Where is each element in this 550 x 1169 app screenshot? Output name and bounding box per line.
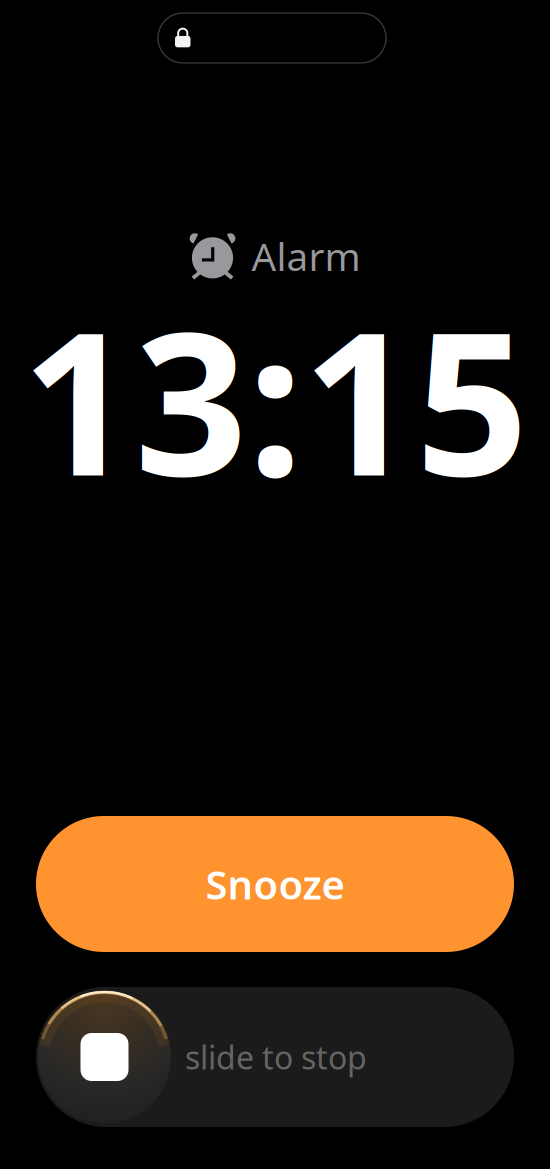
button[interactable]: Snooze <box>36 816 514 952</box>
staticText: slide to stop <box>185 1036 367 1078</box>
staticText: Snooze <box>205 857 344 910</box>
staticText: 13:15 <box>21 268 528 530</box>
staticText: Alarm <box>251 230 360 282</box>
button[interactable]: Slide to stop alarm <box>36 987 514 1127</box>
